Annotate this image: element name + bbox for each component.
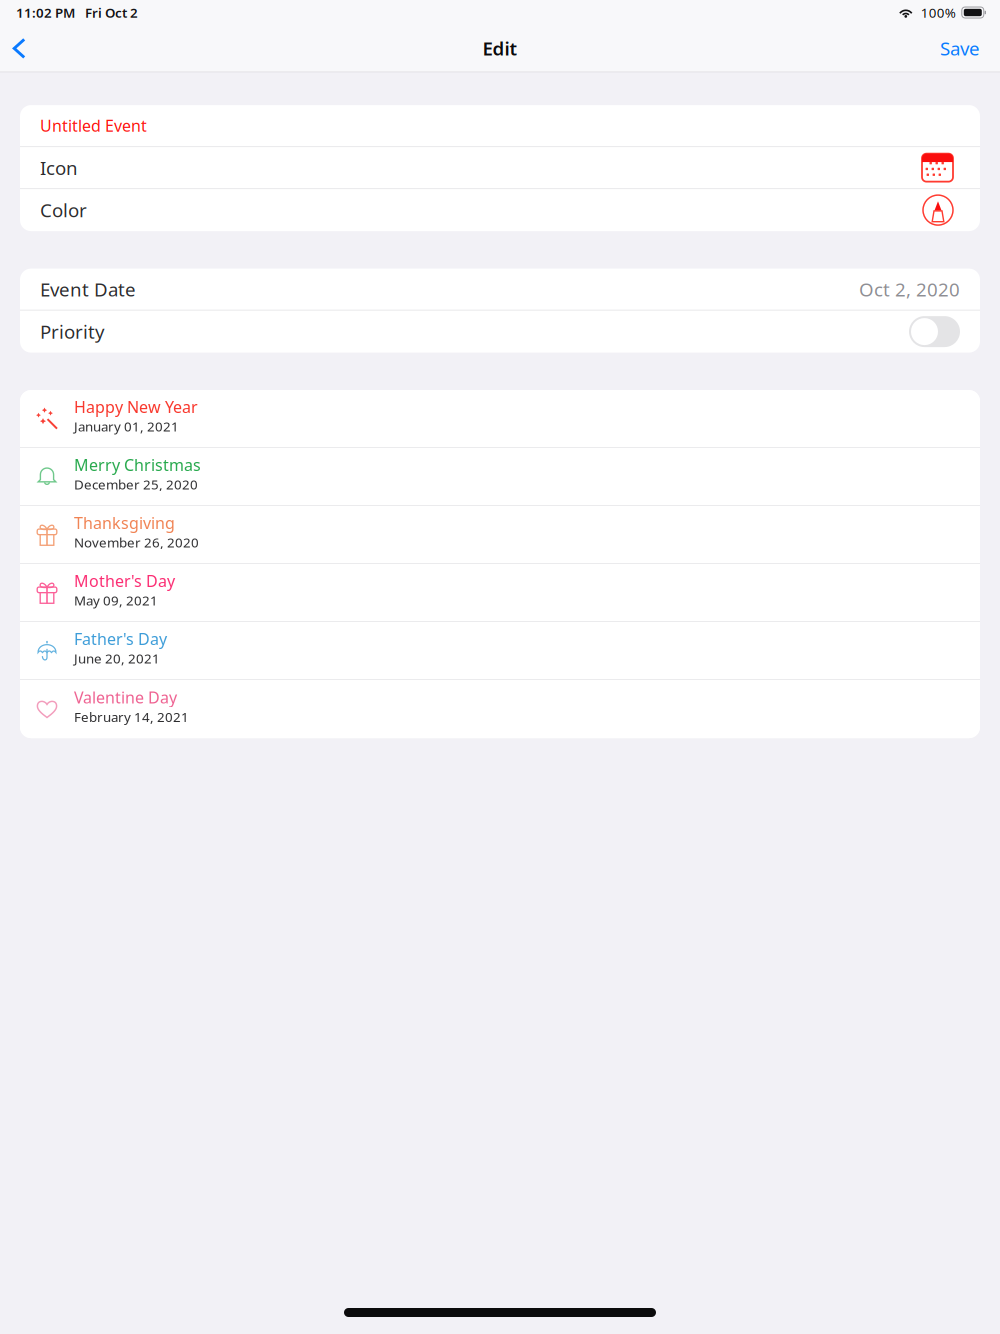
staticText: Merry Christmas [74,454,201,475]
staticText: Happy New Year [74,396,198,417]
button[interactable]: Icon [20,147,980,188]
button[interactable]: Happy New Year [20,390,980,447]
staticText: Fri Oct 2 [85,4,138,21]
button[interactable]: Valentine Day [20,680,980,738]
staticText: Untitled Event [40,115,147,136]
button[interactable]: Back [0,26,38,71]
staticText: Priority [40,319,105,344]
staticText: Thanksgiving [74,512,175,533]
button[interactable]: Mother's Day [20,564,980,621]
staticText: February 14, 2021 [74,708,189,726]
button[interactable]: Save [920,24,1000,73]
staticText: December 25, 2020 [74,475,198,493]
staticText: June 20, 2021 [74,649,160,667]
staticText: Valentine Day [74,687,177,708]
staticText: November 26, 2020 [74,533,199,551]
button[interactable]: Thanksgiving [20,506,980,563]
staticText: Oct 2, 2020 [859,277,960,302]
staticText: Color [40,198,87,222]
staticText: Save [940,36,980,61]
button[interactable]: Event Date [20,269,980,310]
staticText: January 01, 2021 [74,417,179,435]
button[interactable]: Color [20,189,980,231]
staticText: 11:02 PM [16,4,75,21]
staticText: Event Date [40,277,136,302]
staticText: Icon [40,155,78,180]
staticText: 100% [921,4,956,21]
staticText: Father's Day [74,628,167,649]
staticText: May 09, 2021 [74,591,158,609]
staticText: Mother's Day [74,570,175,591]
button[interactable]: Priority [909,316,960,347]
button[interactable]: Merry Christmas [20,448,980,505]
staticText: Edit [482,36,517,61]
button[interactable]: Father's Day [20,622,980,679]
